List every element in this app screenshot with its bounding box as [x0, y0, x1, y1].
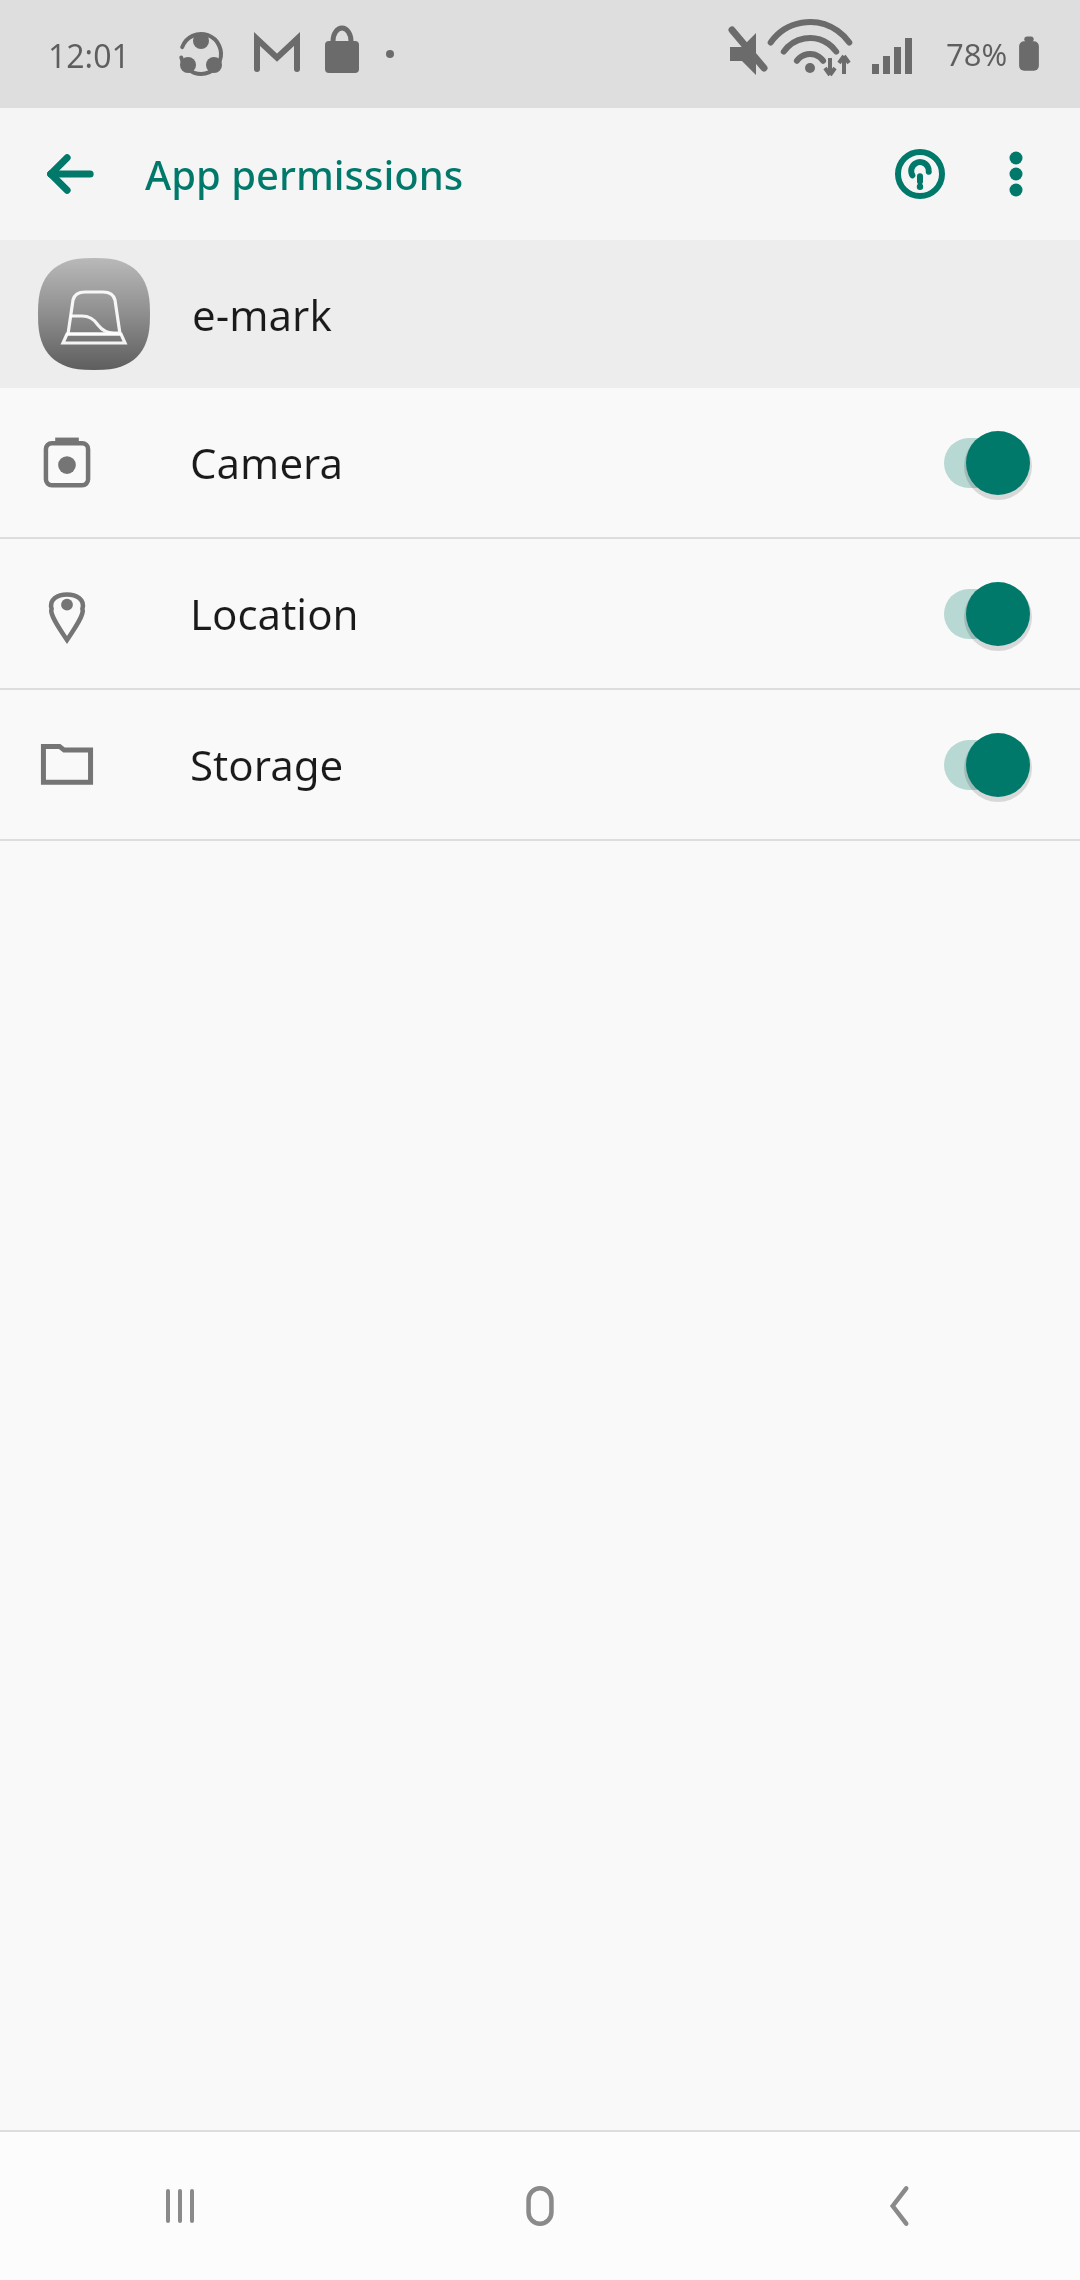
- button[interactable]: Toggle permission: [942, 424, 1038, 502]
- staticText: 78%: [946, 33, 1008, 75]
- button[interactable]: More options: [968, 126, 1064, 222]
- button[interactable]: Back: [720, 2132, 1080, 2280]
- button[interactable]: Home: [360, 2132, 720, 2280]
- staticText: Location: [190, 585, 359, 642]
- button[interactable]: Location: [0, 539, 1080, 688]
- button[interactable]: Storage: [0, 690, 1080, 839]
- button[interactable]: Back: [26, 130, 114, 218]
- staticText: 12:01: [48, 34, 130, 78]
- button[interactable]: Help: [872, 126, 968, 222]
- staticText: e-mark: [192, 286, 332, 343]
- button[interactable]: Camera: [0, 388, 1080, 537]
- button[interactable]: Toggle permission: [942, 575, 1038, 653]
- staticText: Storage: [190, 736, 344, 793]
- button[interactable]: Recents: [0, 2132, 360, 2280]
- staticText: Camera: [190, 434, 344, 491]
- button[interactable]: e-mark: [0, 240, 1080, 388]
- button[interactable]: Toggle permission: [942, 726, 1038, 804]
- staticText: App permissions: [145, 147, 464, 201]
